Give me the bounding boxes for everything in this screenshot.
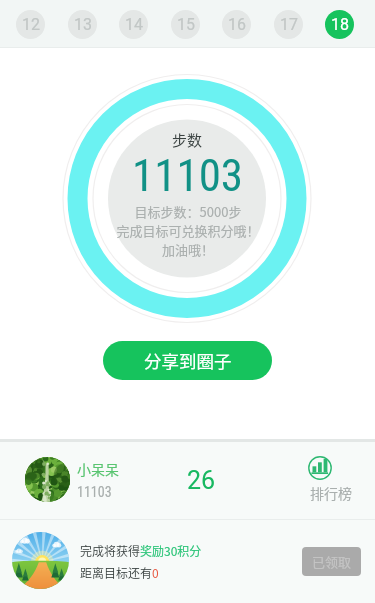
staticText: 15 [177, 15, 195, 34]
button[interactable]: 小呆呆 [0, 442, 375, 519]
staticText: 12 [22, 15, 40, 34]
button[interactable]: 已领取 [302, 547, 361, 576]
button[interactable]: 17 [274, 10, 303, 39]
staticText: 步数 [172, 129, 203, 151]
button[interactable]: 15 [171, 10, 200, 39]
staticText: 11103 [77, 484, 112, 500]
staticText: 排行榜 [310, 483, 352, 503]
staticText: 16 [228, 15, 246, 34]
staticText: 小呆呆 [77, 459, 119, 479]
staticText: 11103 [132, 149, 244, 202]
staticText: 18 [331, 15, 349, 34]
button[interactable]: 14 [119, 10, 148, 39]
staticText: 分享到圈子 [144, 348, 232, 373]
staticText: 13 [74, 15, 92, 34]
staticText: 完成将获得奖励30积分 [80, 542, 202, 559]
button[interactable]: 16 [222, 10, 251, 39]
button[interactable]: 13 [68, 10, 97, 39]
staticText: 距离目标还有0 [80, 564, 159, 581]
button[interactable]: 18 [325, 10, 354, 39]
staticText: 已领取 [312, 552, 352, 571]
staticText: 26 [187, 466, 216, 495]
button[interactable]: 排行榜 [300, 450, 362, 512]
button[interactable]: 12 [16, 10, 45, 39]
staticText: 目标步数：5000步 完成目标可兑换积分哦！ 加油哦！ [116, 202, 260, 259]
staticText: 14 [125, 15, 143, 34]
button[interactable]: 分享到圈子 [103, 341, 272, 380]
staticText: 17 [280, 15, 298, 34]
button[interactable]: 完成将获得奖励30积分 [0, 520, 375, 603]
